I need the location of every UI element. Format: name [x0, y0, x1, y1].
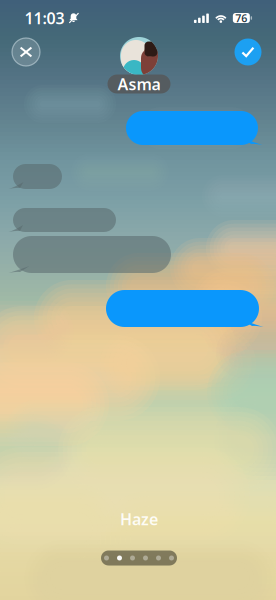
staticText: Haze	[120, 508, 158, 530]
staticText: 76	[235, 11, 247, 25]
button[interactable]: Set wallpaper	[234, 38, 261, 65]
button[interactable]: Close	[12, 38, 40, 66]
staticText: Asma	[117, 73, 160, 95]
staticText: 11:03	[24, 7, 64, 29]
